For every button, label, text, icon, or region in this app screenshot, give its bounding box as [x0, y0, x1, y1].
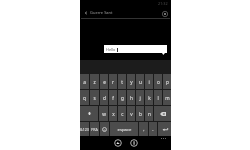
button[interactable]: More options: [161, 138, 166, 139]
button[interactable]: ,: [139, 122, 148, 136]
button[interactable]: Back: [80, 7, 171, 18]
button[interactable]: g: [118, 90, 126, 105]
button[interactable]: Voice message: [128, 137, 139, 148]
staticText: ,: [143, 126, 145, 133]
button[interactable]: s: [90, 90, 99, 105]
button[interactable]: e: [100, 74, 108, 89]
button[interactable]: r: [109, 74, 117, 89]
staticText: t: [121, 79, 123, 85]
staticText: g: [121, 95, 124, 101]
button[interactable]: d: [100, 90, 108, 105]
button[interactable]: c: [118, 106, 126, 121]
button[interactable]: t: [118, 74, 126, 89]
button[interactable]: [100, 122, 109, 136]
staticText: u: [139, 79, 142, 85]
staticText: 21:32: [158, 1, 168, 6]
button[interactable]: h: [127, 90, 135, 105]
staticText: x: [112, 111, 115, 117]
staticText: Guerre Sant: [90, 10, 113, 15]
button[interactable]: Attach: [112, 137, 123, 148]
button[interactable]: a: [80, 74, 89, 89]
button[interactable]: &123: [80, 122, 89, 136]
staticText: k: [148, 95, 151, 101]
button[interactable]: b: [136, 106, 144, 121]
button[interactable]: m: [163, 90, 171, 105]
staticText: j: [139, 95, 141, 101]
staticText: q: [83, 95, 86, 101]
button[interactable]: [80, 106, 98, 121]
button[interactable]: o: [154, 74, 162, 89]
staticText: Hello: [106, 47, 116, 52]
button[interactable]: q: [80, 90, 89, 105]
button[interactable]: [158, 122, 171, 136]
staticText: v: [130, 111, 133, 117]
staticText: h: [130, 95, 133, 101]
button[interactable]: l: [154, 90, 162, 105]
staticText: p: [166, 79, 169, 85]
button[interactable]: z: [90, 74, 99, 89]
staticText: y: [130, 79, 133, 85]
staticText: c: [121, 111, 124, 117]
staticText: f: [112, 95, 114, 101]
button[interactable]: i: [145, 74, 153, 89]
button[interactable]: p: [163, 74, 171, 89]
staticText: w: [102, 111, 106, 117]
staticText: o: [157, 79, 160, 85]
button[interactable]: FRA: [90, 122, 99, 136]
button[interactable]: .: [149, 122, 157, 136]
staticText: b: [139, 111, 142, 117]
button[interactable]: w: [99, 106, 108, 121]
staticText: espace: [117, 126, 132, 132]
staticText: l: [157, 95, 159, 101]
button[interactable]: y: [127, 74, 135, 89]
staticText: r: [112, 79, 114, 85]
button[interactable]: Hello: [104, 45, 167, 53]
staticText: FRA: [91, 127, 98, 132]
staticText: d: [103, 95, 106, 101]
staticText: z: [93, 79, 96, 85]
button[interactable]: j: [136, 90, 144, 105]
staticText: a: [83, 79, 86, 85]
staticText: &123: [80, 127, 89, 132]
button[interactable]: v: [127, 106, 135, 121]
staticText: m: [165, 95, 170, 101]
button[interactable]: f: [109, 90, 117, 105]
button[interactable]: New message: [160, 9, 169, 18]
staticText: n: [148, 111, 151, 117]
button[interactable]: espace: [110, 122, 138, 136]
staticText: s: [93, 95, 96, 101]
other: Back: [84, 11, 88, 15]
button[interactable]: x: [109, 106, 117, 121]
button[interactable]: u: [136, 74, 144, 89]
staticText: .: [152, 126, 154, 133]
staticText: e: [103, 79, 106, 85]
staticText: i: [148, 79, 150, 85]
button[interactable]: k: [145, 90, 153, 105]
button[interactable]: [154, 106, 171, 121]
button[interactable]: n: [145, 106, 153, 121]
